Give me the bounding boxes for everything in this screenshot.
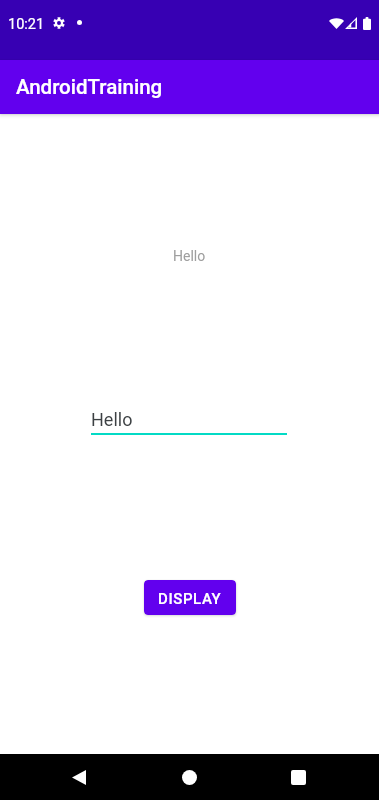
staticText: Hello <box>173 248 206 264</box>
button[interactable]: Hello <box>91 409 287 435</box>
button[interactable]: Back <box>56 754 102 800</box>
staticText: 10:21 <box>8 16 45 33</box>
staticText: DISPLAY <box>158 590 222 608</box>
staticText: Hello <box>91 409 133 430</box>
staticText: AndroidTraining <box>16 75 163 99</box>
button[interactable]: Home <box>166 754 212 800</box>
button[interactable]: Recent apps <box>275 754 321 800</box>
button[interactable]: DISPLAY <box>144 580 236 615</box>
